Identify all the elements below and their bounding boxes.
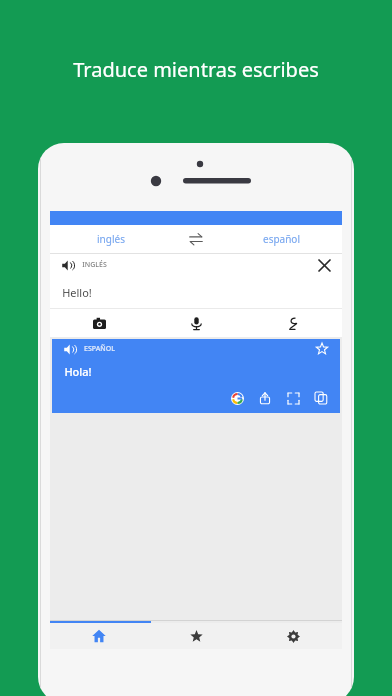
button[interactable]: Fullscreen — [282, 387, 304, 409]
button[interactable]: Listen translation — [60, 340, 78, 358]
button[interactable]: Save to phrasebook — [312, 339, 332, 359]
staticText: Hola! — [64, 364, 92, 379]
staticText: Traduce mientras escribes — [73, 56, 319, 83]
button[interactable]: Voice input — [148, 309, 245, 337]
button[interactable]: Phrasebook — [148, 623, 245, 649]
button[interactable]: Settings — [245, 623, 342, 649]
staticText: Hello! — [62, 285, 92, 300]
button[interactable]: Handwriting input — [245, 309, 342, 337]
button[interactable]: Home — [50, 623, 148, 649]
button[interactable]: Share — [254, 387, 276, 409]
button[interactable]: Copy — [310, 387, 332, 409]
staticText: inglés — [97, 232, 125, 246]
button[interactable]: inglés — [50, 225, 172, 253]
button[interactable]: español — [220, 225, 342, 253]
button[interactable]: Search on Google — [226, 387, 248, 409]
button[interactable]: Clear — [314, 255, 334, 275]
staticText: español — [263, 232, 300, 246]
button[interactable]: Camera input — [50, 309, 148, 337]
button[interactable]: Listen source — [58, 256, 76, 274]
staticText: ESPAÑOL — [84, 344, 115, 354]
staticText: INGLÉS — [82, 260, 107, 270]
button[interactable]: Swap languages — [172, 225, 220, 253]
